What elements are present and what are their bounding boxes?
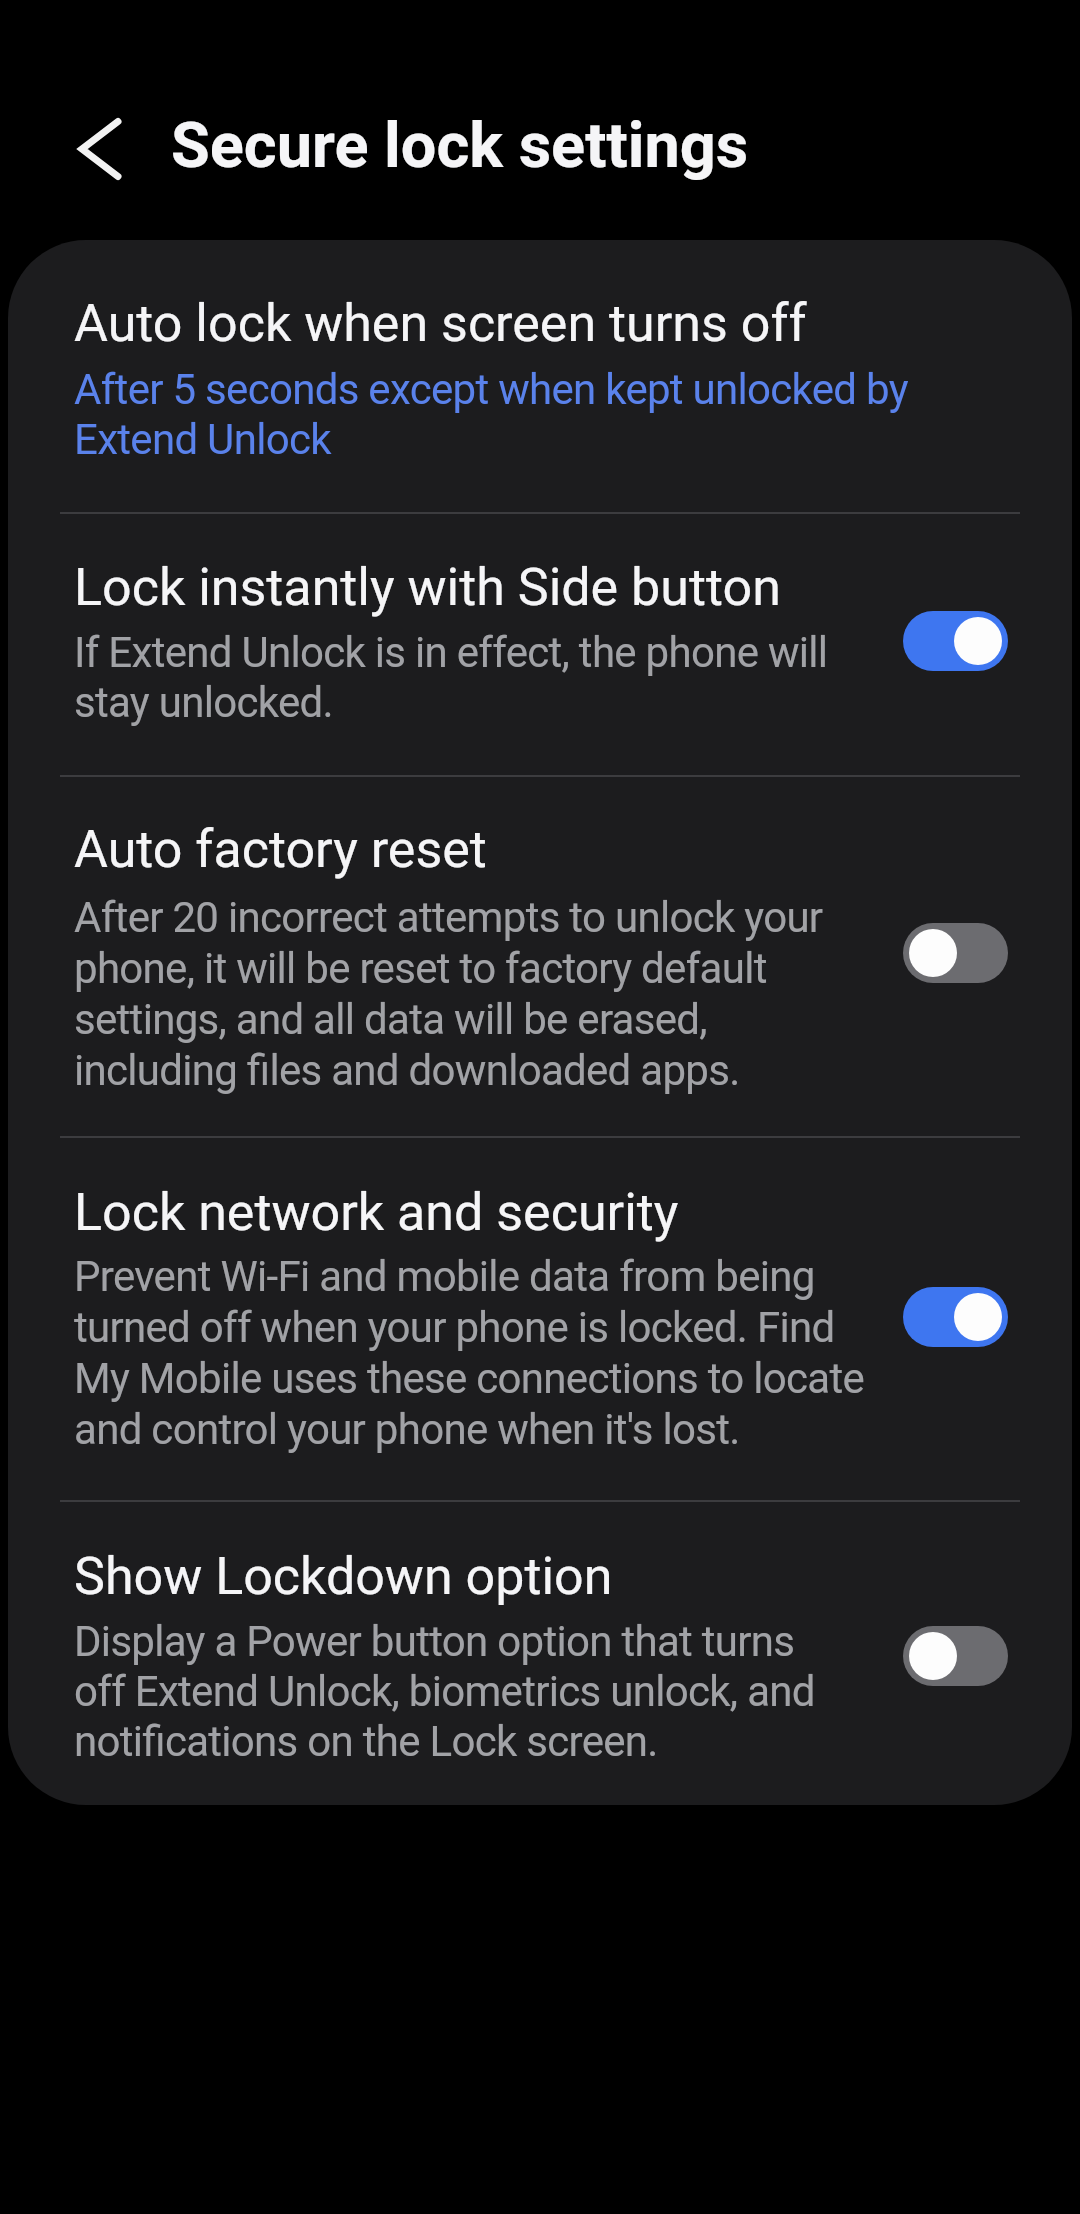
staticText: off Extend Unlock, biometrics unlock, an… [74,1667,815,1716]
staticText: stay unlocked. [74,678,333,727]
staticText: Prevent Wi-Fi and mobile data from being [74,1252,815,1301]
button[interactable] [8,1500,1072,1805]
button[interactable] [903,611,1008,671]
staticText: settings, and all data will be erased, [74,995,707,1044]
button[interactable] [8,775,1072,1136]
staticText: Show Lockdown option [74,1546,613,1607]
button[interactable] [8,512,1072,775]
button[interactable] [903,923,1008,983]
button[interactable] [903,1287,1008,1347]
staticText: Display a Power button option that turns [74,1617,795,1666]
staticText: Lock instantly with Side button [74,557,781,618]
staticText: Auto lock when screen turns off [74,293,807,354]
staticText: If Extend Unlock is in effect, the phone… [74,628,828,677]
staticText: Secure lock settings [171,109,749,183]
staticText: After 5 seconds except when kept unlocke… [74,365,908,414]
button[interactable] [63,113,135,185]
staticText: phone, it will be reset to factory defau… [74,944,767,993]
staticText: After 20 incorrect attempts to unlock yo… [74,893,823,942]
staticText: Auto factory reset [74,819,487,880]
button[interactable] [8,240,1072,512]
staticText: My Mobile uses these connections to loca… [74,1354,865,1403]
staticText: and control your phone when it's lost. [74,1405,740,1454]
staticText: including files and downloaded apps. [74,1046,740,1095]
staticText: Lock network and security [74,1182,679,1243]
staticText: turned off when your phone is locked. Fi… [74,1303,835,1352]
staticText: Extend Unlock [74,415,331,464]
button[interactable] [903,1626,1008,1686]
staticText: notifications on the Lock screen. [74,1717,658,1766]
button[interactable] [8,1136,1072,1500]
